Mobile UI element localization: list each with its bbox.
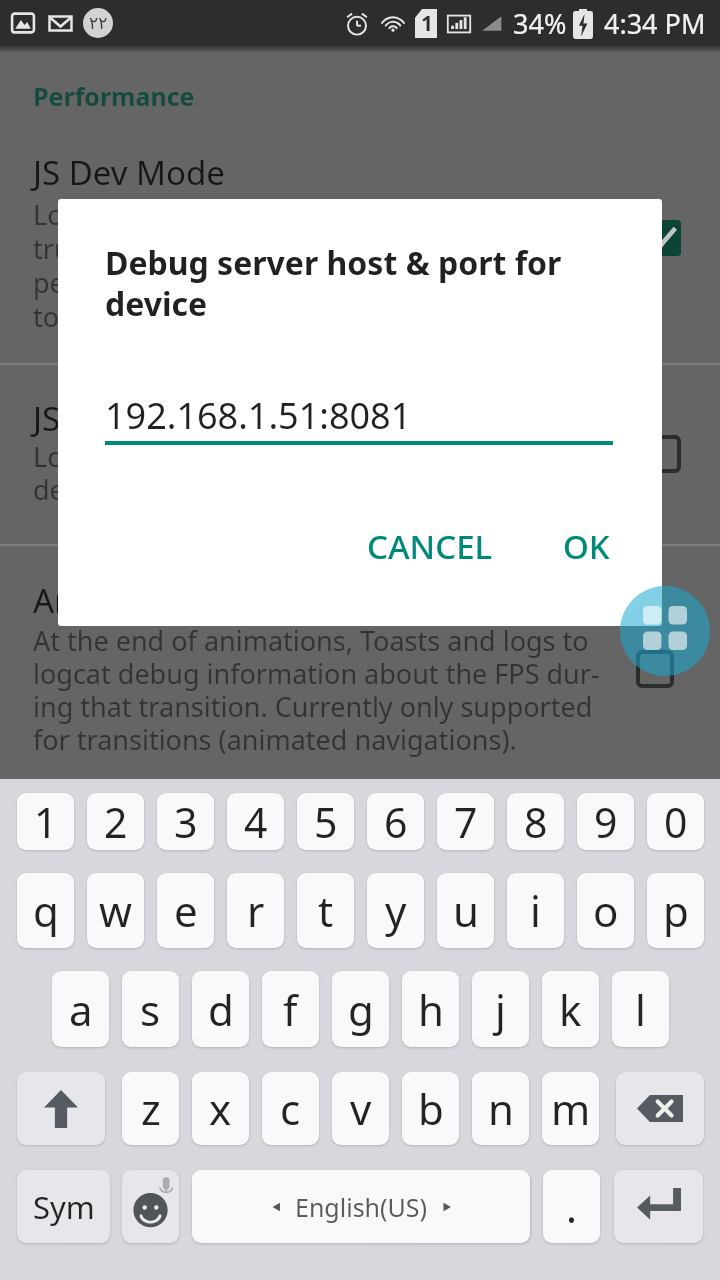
button[interactable]: English(US) <box>192 1170 530 1243</box>
button[interactable]: . <box>543 1170 600 1243</box>
button[interactable]: s <box>122 971 179 1047</box>
button[interactable]: 9 <box>577 793 634 850</box>
button[interactable]: c <box>262 1072 319 1145</box>
button[interactable]: i <box>507 873 564 948</box>
staticText: d <box>208 981 234 1038</box>
button[interactable]: j <box>472 971 529 1047</box>
staticText: z <box>141 1080 161 1137</box>
button[interactable]: o <box>577 873 634 948</box>
staticText: 6 <box>384 794 408 850</box>
button[interactable]: 8 <box>507 793 564 850</box>
button[interactable]: n <box>472 1072 529 1145</box>
button[interactable]: t <box>297 873 354 948</box>
button[interactable]: a <box>52 971 109 1047</box>
staticText: 192.168.1.51:8081 <box>105 391 412 440</box>
staticText: 7 <box>454 794 478 850</box>
staticText: 34% <box>513 5 567 42</box>
button[interactable]: CANCEL <box>343 510 517 583</box>
button[interactable]: OK <box>539 510 634 583</box>
staticText: m <box>551 1080 591 1137</box>
staticText: l <box>635 981 646 1038</box>
button[interactable]: d <box>192 971 249 1047</box>
button[interactable]: k <box>542 971 599 1047</box>
staticText: g <box>348 981 374 1038</box>
staticText: 4:34 PM <box>604 5 706 42</box>
button[interactable]: q <box>17 873 74 948</box>
staticText: s <box>140 981 161 1038</box>
button[interactable]: b <box>402 1072 459 1145</box>
staticText: OK <box>563 524 610 569</box>
staticText: JS Dev Mode <box>33 150 225 195</box>
button[interactable]: 5 <box>297 793 354 850</box>
staticText: f <box>283 981 298 1038</box>
button[interactable]: 4 <box>227 793 284 850</box>
button[interactable]: 0 <box>647 793 704 850</box>
button[interactable]: 7 <box>437 793 494 850</box>
staticText: Sym <box>33 1186 95 1228</box>
button[interactable]: g <box>332 971 389 1047</box>
button[interactable]: e <box>157 873 214 948</box>
staticText: Debug server host & port for device <box>105 241 605 326</box>
button[interactable]: p <box>647 873 704 948</box>
button[interactable]: u <box>437 873 494 948</box>
staticText: i <box>530 882 541 939</box>
button[interactable]: Toggle <box>645 437 679 471</box>
staticText: An <box>33 578 75 623</box>
staticText: ۲۲ <box>89 13 108 33</box>
staticText: u <box>453 882 479 939</box>
staticText: v <box>350 1080 372 1137</box>
staticText: 9 <box>594 794 618 850</box>
staticText: English(US) <box>295 1190 428 1224</box>
staticText: e <box>174 882 198 939</box>
button[interactable]: f <box>262 971 319 1047</box>
button[interactable]: Toggle animations <box>638 652 672 686</box>
button[interactable]: JS Dev Mode toggle <box>645 220 681 256</box>
staticText: n <box>488 1080 514 1137</box>
button[interactable]: Emoji and voice input <box>122 1170 179 1243</box>
staticText: y <box>385 882 407 939</box>
staticText: 3 <box>174 794 198 850</box>
staticText: h <box>418 981 444 1038</box>
staticText: . <box>566 1179 577 1235</box>
button[interactable]: 3 <box>157 793 214 850</box>
button[interactable]: 1 <box>17 793 74 850</box>
button[interactable]: z <box>122 1072 179 1145</box>
button[interactable]: Shift <box>17 1072 105 1145</box>
button[interactable]: h <box>402 971 459 1047</box>
staticText: r <box>247 882 265 939</box>
staticText: k <box>559 981 582 1038</box>
button[interactable]: Sym <box>17 1170 110 1243</box>
staticText: Lo tru pe to <box>33 196 71 335</box>
staticText: o <box>593 882 619 939</box>
button[interactable]: Backspace <box>616 1072 704 1145</box>
staticText: At the end of animations, Toasts and log… <box>33 622 600 758</box>
staticText: x <box>209 1080 232 1137</box>
staticText: q <box>33 882 59 939</box>
staticText: b <box>418 1080 444 1137</box>
staticText: 1 <box>34 794 58 850</box>
button[interactable]: m <box>542 1072 599 1145</box>
button[interactable]: r <box>227 873 284 948</box>
staticText: JS <box>33 396 61 441</box>
staticText: p <box>663 882 689 939</box>
button[interactable]: y <box>367 873 424 948</box>
staticText: 5 <box>314 794 338 850</box>
button[interactable]: l <box>612 971 669 1047</box>
button[interactable]: v <box>332 1072 389 1145</box>
button[interactable]: 2 <box>87 793 144 850</box>
staticText: w <box>99 882 133 939</box>
staticText: j <box>495 981 506 1038</box>
staticText: 1 <box>421 9 434 38</box>
staticText: Performance <box>33 79 195 113</box>
button[interactable]: Enter <box>614 1170 703 1243</box>
staticText: 2 <box>104 794 128 850</box>
staticText: 8 <box>524 794 548 850</box>
staticText: Lo de <box>33 438 65 508</box>
staticText: 0 <box>664 794 688 850</box>
button[interactable]: Open dev menu <box>620 586 710 676</box>
button[interactable]: w <box>87 873 144 948</box>
button[interactable]: x <box>192 1072 249 1145</box>
button[interactable]: 6 <box>367 793 424 850</box>
staticText: t <box>318 882 334 939</box>
staticText: c <box>280 1080 301 1137</box>
